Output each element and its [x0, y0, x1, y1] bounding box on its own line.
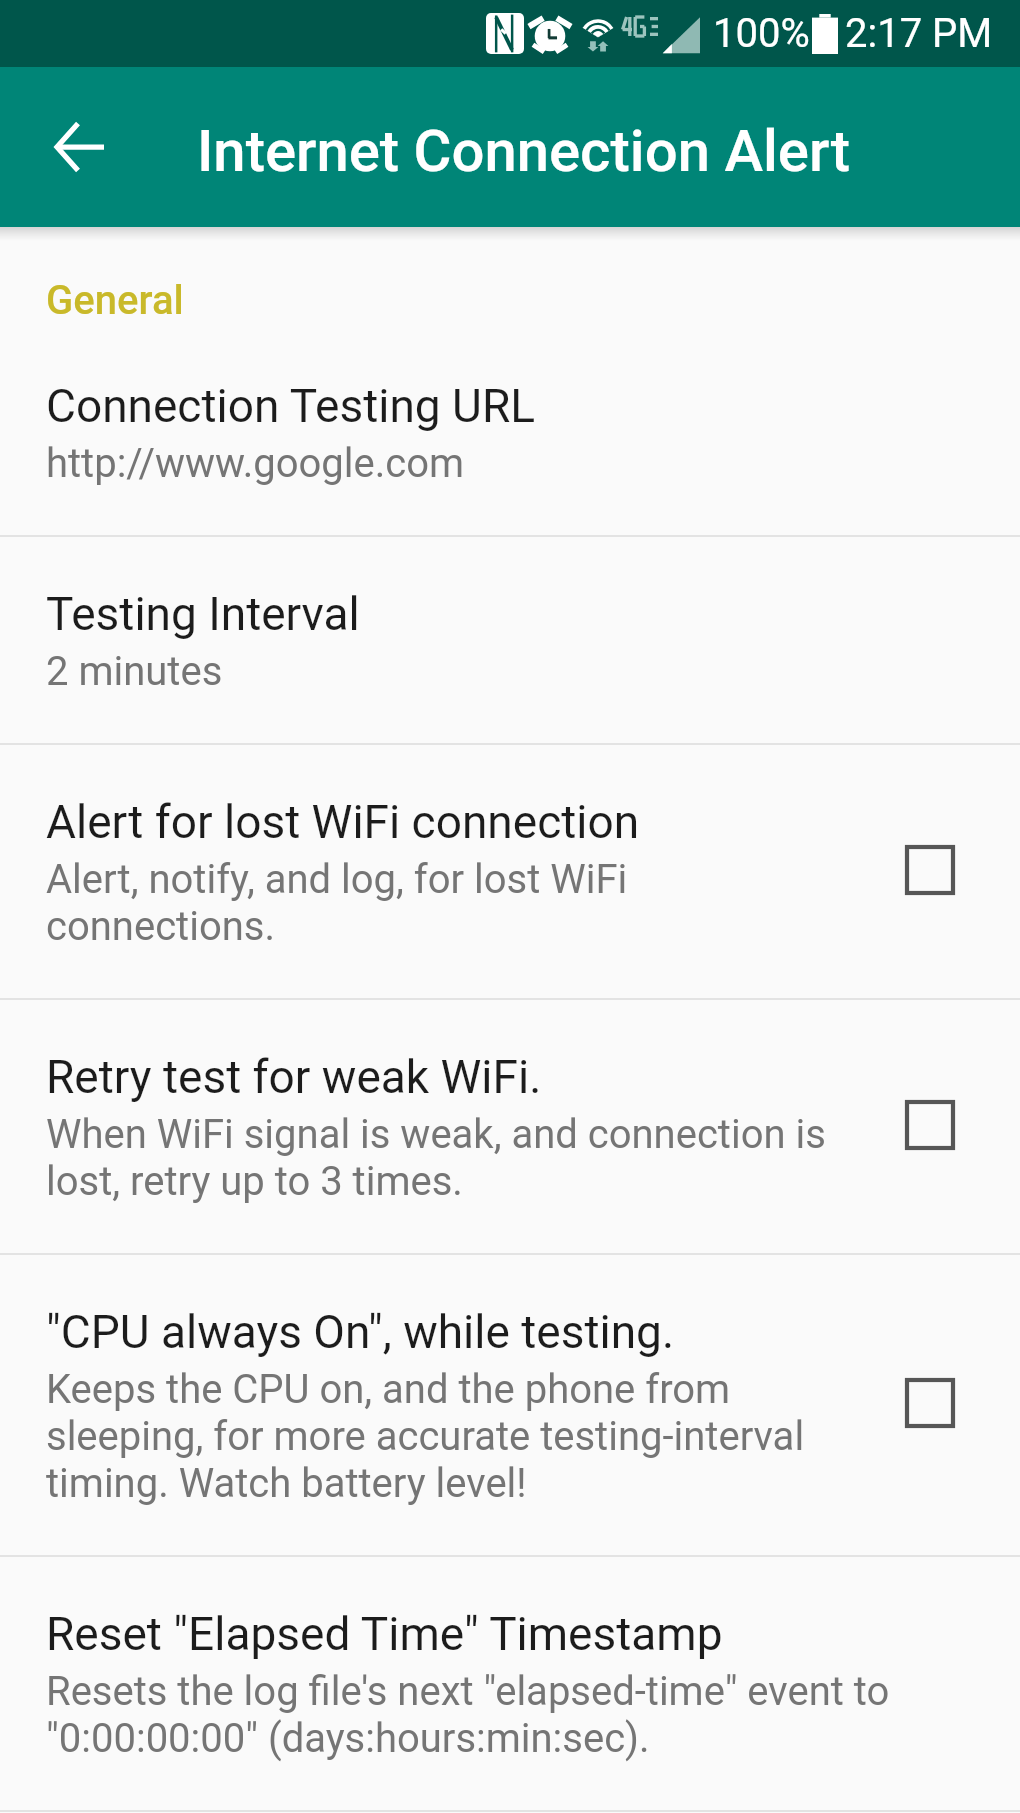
button[interactable]: "CPU always On", while testing.: [0, 1255, 1020, 1555]
button[interactable]: Toggle setting: [885, 1080, 975, 1170]
button[interactable]: Retry test for weak WiFi.: [0, 1000, 1020, 1253]
staticText: Alert for lost WiFi connection: [46, 795, 640, 849]
staticText: Connection Testing URL: [46, 379, 536, 433]
staticText: Internet Connection Alert: [197, 117, 851, 185]
staticText: Resets the log file's next "elapsed-time…: [46, 1668, 890, 1762]
button[interactable]: Connection Testing URL: [0, 329, 1020, 535]
staticText: 2 minutes: [46, 648, 223, 695]
button[interactable]: Toggle setting: [885, 825, 975, 915]
staticText: 2:17 PM: [845, 10, 993, 57]
staticText: 100%: [713, 10, 810, 57]
button[interactable]: Toggle setting: [885, 1358, 975, 1448]
button[interactable]: Reset "Elapsed Time" Timestamp: [0, 1557, 1020, 1810]
staticText: Reset "Elapsed Time" Timestamp: [46, 1607, 723, 1661]
staticText: General: [46, 277, 184, 324]
staticText: http://www.google.com: [46, 440, 465, 487]
staticText: Alert, notify, and log, for lost WiFi co…: [46, 856, 628, 950]
staticText: "CPU always On", while testing.: [46, 1305, 675, 1359]
staticText: When WiFi signal is weak, and connection…: [46, 1111, 826, 1205]
staticText: Retry test for weak WiFi.: [46, 1050, 542, 1104]
staticText: Keeps the CPU on, and the phone from sle…: [46, 1366, 805, 1507]
button[interactable]: Testing Interval: [0, 537, 1020, 743]
button[interactable]: Alert for lost WiFi connection: [0, 745, 1020, 998]
staticText: Testing Interval: [46, 587, 360, 641]
button[interactable]: Back: [30, 98, 128, 196]
